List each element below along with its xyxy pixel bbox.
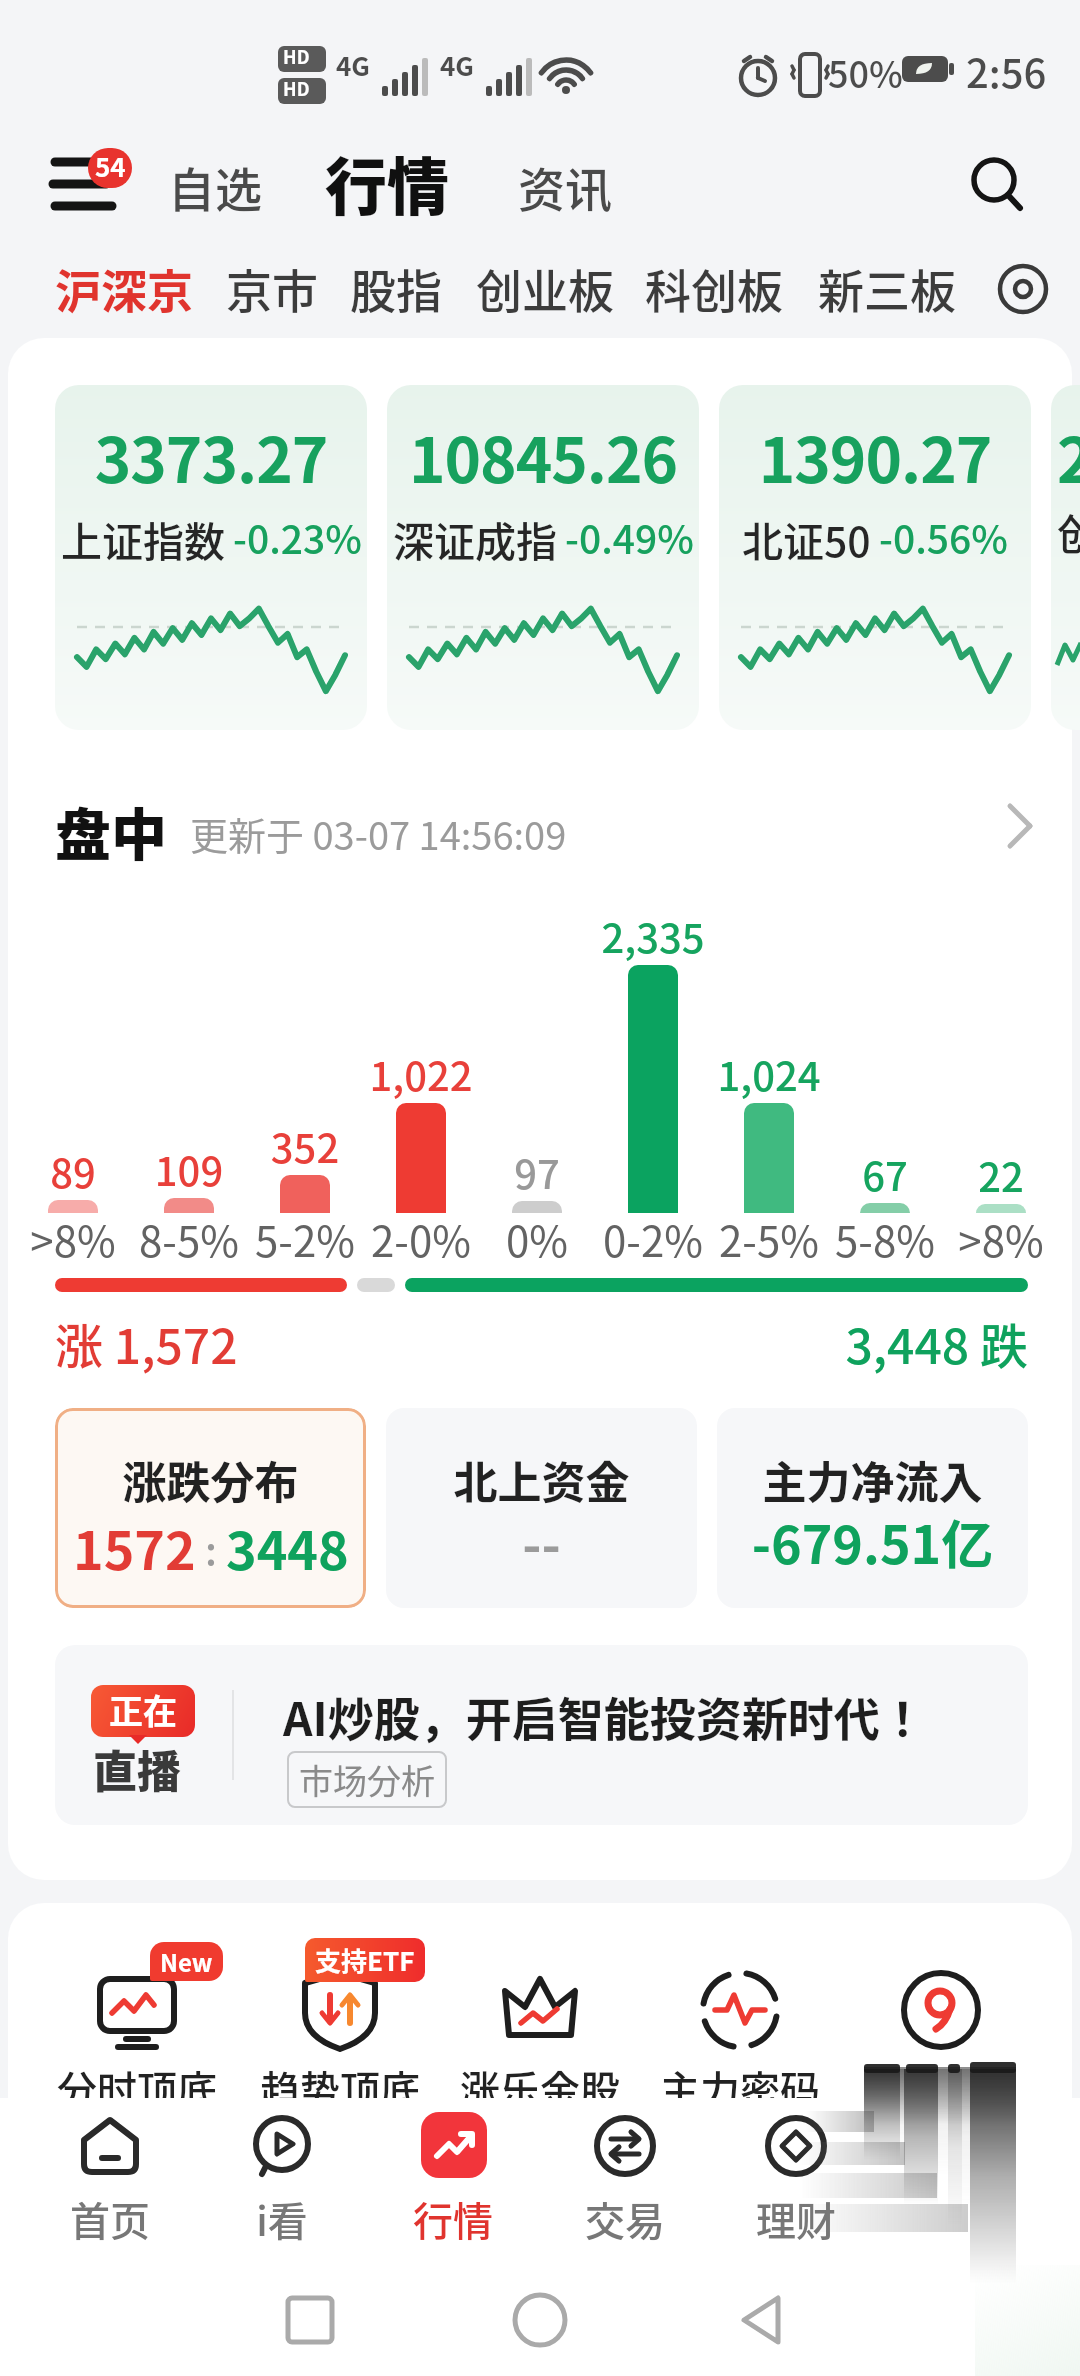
staticText: 1572 (73, 1510, 196, 1585)
staticText: 市场分析 (299, 1755, 435, 1804)
staticText: 3448 (226, 1510, 349, 1585)
staticText: 上证指数 (61, 509, 225, 568)
button[interactable]: i看 (207, 2108, 357, 2248)
button[interactable]: 趋势顶底 (260, 1955, 420, 2100)
staticText: 5-8% (805, 1208, 965, 1269)
button[interactable]: 京市 (226, 255, 318, 322)
button[interactable] (960, 148, 1040, 228)
staticText: 直播 (93, 1737, 181, 1801)
button[interactable]: 理财 (721, 2108, 871, 2248)
staticText: 109 (109, 1140, 269, 1198)
staticText: >8% (0, 1208, 153, 1269)
button[interactable]: 3373.27 (55, 385, 367, 730)
staticText: 自选 (168, 152, 262, 220)
staticText: 支持ETF (315, 1941, 415, 1979)
staticText: 北证50 (742, 509, 871, 568)
staticText: 67 (805, 1145, 965, 1203)
staticText: 行情 (325, 138, 450, 228)
staticText: 3,448 跌 (55, 1308, 1028, 1378)
staticText: i看 (207, 2190, 357, 2248)
button[interactable]: 行情 (325, 138, 450, 228)
staticText: 理财 (721, 2190, 871, 2248)
staticText: 盘中 (55, 790, 167, 871)
staticText: 涨 1,572 (55, 1308, 238, 1378)
staticText: New (160, 1944, 213, 1979)
staticText: 涨跌分布 (55, 1448, 366, 1512)
staticText: 北上资金 (386, 1448, 697, 1512)
staticText: 1390.27 (719, 411, 1031, 501)
staticText: 京市 (226, 255, 318, 322)
button[interactable]: 10845.26 (387, 385, 699, 730)
button[interactable]: 科创板 (645, 255, 783, 322)
staticText: 1,022 (341, 1045, 501, 1103)
staticText: 2-0% (341, 1208, 501, 1269)
staticText: 资讯 (518, 152, 612, 220)
button[interactable]: 沪深京 (55, 255, 193, 322)
staticText: AI炒股，开启智能投资新时代！ (283, 1683, 926, 1750)
staticText: 深证成指 (393, 509, 557, 568)
staticText: 创 (1057, 501, 1080, 562)
staticText: 2,335 (573, 907, 733, 965)
staticText: 8-5% (109, 1208, 269, 1269)
staticText: 创业板 (476, 255, 614, 322)
staticText: 2 (1057, 411, 1080, 501)
staticText: 352 (225, 1117, 385, 1175)
staticText: 股指 (350, 255, 442, 322)
staticText: -- (386, 1504, 697, 1579)
staticText: 3373.27 (55, 411, 367, 501)
button[interactable]: 股指 (350, 255, 442, 322)
staticText: 4G (440, 46, 474, 84)
staticText: 0% (457, 1208, 617, 1269)
staticText: 4G (336, 46, 370, 84)
button[interactable]: 1390.27 (719, 385, 1031, 730)
staticText: 分时顶底 (57, 2059, 217, 2117)
button[interactable]: 行情 (378, 2108, 528, 2248)
staticText: 科创板 (645, 255, 783, 322)
staticText: HD (283, 78, 310, 101)
staticText: 主力净流入 (717, 1448, 1028, 1512)
staticText: 更新于 03-07 14:56:09 (190, 806, 567, 861)
button[interactable]: 北上资金 (386, 1408, 697, 1608)
button[interactable] (990, 258, 1056, 320)
staticText: -0.56% (879, 509, 1008, 565)
staticText: -679.51亿 (717, 1504, 1028, 1579)
staticText: 10845.26 (387, 411, 699, 501)
staticText: 5-2% (225, 1208, 385, 1269)
staticText: 22 (921, 1146, 1080, 1204)
button[interactable] (861, 1955, 1021, 2100)
button[interactable]: 首页 (35, 2108, 185, 2248)
button[interactable]: 涨乐金股 (460, 1955, 620, 2100)
staticText: 97 (457, 1143, 617, 1201)
staticText: 涨乐金股 (460, 2059, 620, 2117)
staticText: >8% (921, 1208, 1080, 1269)
button[interactable]: 交易 (550, 2108, 700, 2248)
button[interactable]: 新三板 (818, 255, 956, 322)
staticText: 0-2% (573, 1208, 733, 1269)
staticText: 新三板 (818, 255, 956, 322)
staticText: -0.23% (233, 509, 362, 565)
staticText: 主力密码 (660, 2059, 820, 2117)
staticText: 1,024 (689, 1045, 849, 1103)
button[interactable]: 分时顶底 (57, 1955, 217, 2100)
staticText: 交易 (550, 2190, 700, 2248)
button[interactable]: 自选 (168, 152, 262, 220)
button[interactable]: 涨跌分布 (55, 1408, 366, 1608)
staticText: 行情 (378, 2190, 528, 2248)
staticText: 50% (828, 46, 903, 98)
button[interactable]: 创业板 (476, 255, 614, 322)
staticText: -0.49% (565, 509, 694, 565)
staticText: 首页 (35, 2190, 185, 2248)
staticText: 2-5% (689, 1208, 849, 1269)
staticText: HD (283, 46, 310, 69)
staticText: 54 (95, 148, 126, 185)
staticText: 正在 (109, 1685, 177, 1734)
staticText: : (196, 1519, 226, 1577)
staticText: 趋势顶底 (260, 2059, 420, 2117)
button[interactable]: 主力密码 (660, 1955, 820, 2100)
staticText: 2:56 (966, 42, 1047, 100)
button[interactable]: 正在 (55, 1645, 1028, 1825)
staticText: 沪深京 (55, 255, 193, 322)
button[interactable]: 主力净流入 (717, 1408, 1028, 1608)
button[interactable]: 54 (40, 140, 150, 230)
button[interactable]: 资讯 (518, 152, 612, 220)
